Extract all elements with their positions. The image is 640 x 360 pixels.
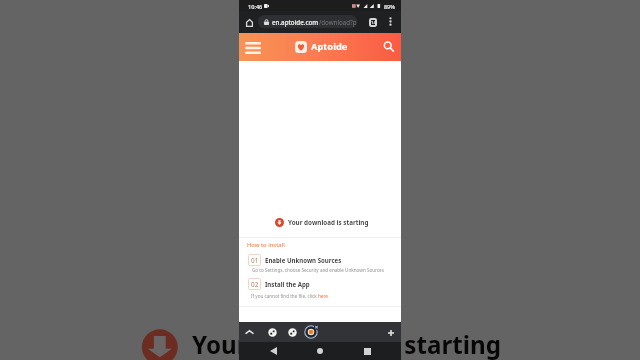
staticText: /download?p bbox=[319, 18, 357, 26]
button[interactable]: New tab bbox=[384, 326, 398, 340]
button[interactable]: Notification bbox=[285, 325, 299, 339]
button[interactable]: Tabs bbox=[365, 14, 381, 30]
button[interactable]: 01 bbox=[248, 254, 342, 266]
button[interactable]: 02 bbox=[248, 278, 310, 290]
button[interactable]: Your download is starting bbox=[275, 217, 369, 227]
staticText: Your download is starting bbox=[192, 328, 501, 360]
staticText: Install the App bbox=[265, 280, 310, 288]
button[interactable]: Home bbox=[241, 15, 257, 31]
staticText: Enable Unknown Sources bbox=[265, 256, 342, 264]
button[interactable]: Expand toolbar bbox=[242, 325, 256, 339]
staticText: 89% bbox=[384, 3, 395, 10]
button[interactable]: Home bbox=[311, 342, 329, 360]
staticText: Aptoide bbox=[311, 40, 348, 53]
staticText: 02 bbox=[251, 280, 259, 289]
staticText: 10:46 bbox=[248, 3, 263, 11]
button[interactable]: Back bbox=[264, 342, 282, 360]
button[interactable]: Search bbox=[379, 37, 397, 55]
button[interactable]: More options bbox=[383, 14, 397, 28]
button[interactable]: Notification bbox=[265, 325, 279, 339]
staticText: Go to Settings, choose Security and enab… bbox=[252, 267, 384, 273]
staticText: 01 bbox=[251, 256, 259, 265]
staticText: en.aptoide.com bbox=[272, 18, 319, 26]
staticText: If you cannot find the file, click bbox=[251, 293, 318, 299]
button[interactable]: Download in progress bbox=[304, 325, 318, 339]
staticText: 14 bbox=[371, 20, 376, 26]
button[interactable]: Recent apps bbox=[358, 342, 376, 360]
button[interactable]: Menu bbox=[241, 38, 264, 58]
staticText: How to install bbox=[247, 241, 285, 249]
button[interactable]: en.aptoide.com bbox=[258, 15, 357, 28]
staticText: here bbox=[318, 293, 328, 299]
staticText: Your download is starting bbox=[288, 218, 369, 227]
